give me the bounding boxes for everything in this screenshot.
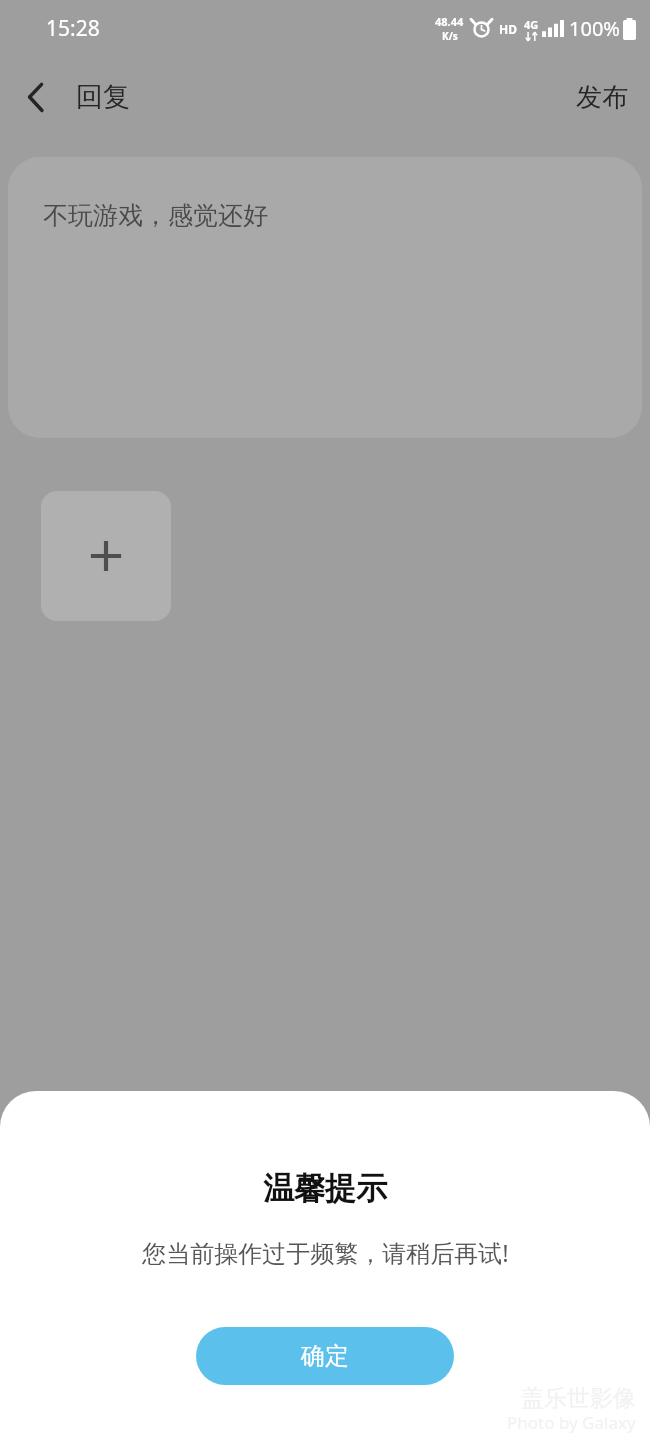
staticText: 48.44 xyxy=(435,14,464,29)
staticText: Photo by Galaxy xyxy=(507,1411,636,1434)
button[interactable]: Back xyxy=(0,72,148,122)
staticText: 不玩游戏，感觉还好 xyxy=(43,200,268,231)
staticText: 确定 xyxy=(301,1341,349,1371)
staticText: 盖乐世影像 xyxy=(521,1384,636,1413)
staticText: 100% xyxy=(569,15,620,42)
staticText: 发布 xyxy=(576,81,628,114)
staticText: 温馨提示 xyxy=(263,1169,387,1208)
staticText: HD xyxy=(499,21,517,37)
button[interactable]: Add photo xyxy=(41,491,171,621)
button[interactable]: 发布 xyxy=(554,71,650,124)
staticText: 4G xyxy=(524,17,539,32)
button[interactable]: 不玩游戏，感觉还好 xyxy=(8,157,642,438)
button[interactable]: 确定 xyxy=(196,1327,454,1385)
staticText: K/s xyxy=(442,29,458,43)
staticText: 您当前操作过于频繁，请稍后再试! xyxy=(142,1236,509,1269)
staticText: 15:28 xyxy=(46,14,100,43)
staticText: 回复 xyxy=(76,80,130,114)
